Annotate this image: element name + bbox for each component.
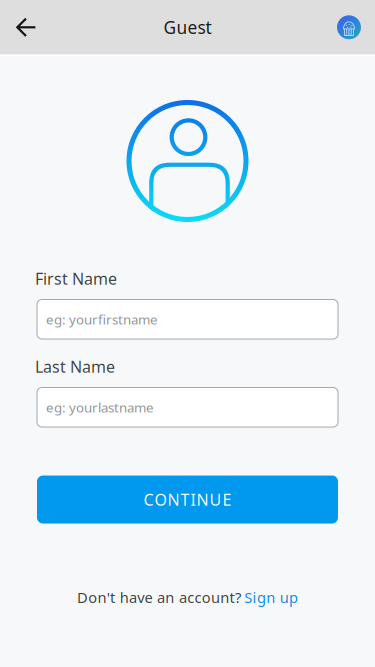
staticText: eg: yourlastname — [46, 398, 154, 416]
staticText: Last Name — [35, 356, 115, 377]
staticText: Sign up — [244, 587, 298, 607]
staticText: First Name — [35, 268, 117, 289]
button[interactable]: CONTINUE — [37, 475, 338, 523]
button[interactable]: Back — [6, 5, 46, 49]
staticText: Guest — [163, 16, 211, 39]
staticText: Don't have an account? — [77, 587, 241, 607]
staticText: CONTINUE — [143, 489, 231, 510]
button[interactable]: Sign up — [242, 587, 298, 607]
button[interactable]: Shop — [329, 5, 369, 49]
staticText: eg: yourfirstname — [46, 310, 158, 328]
